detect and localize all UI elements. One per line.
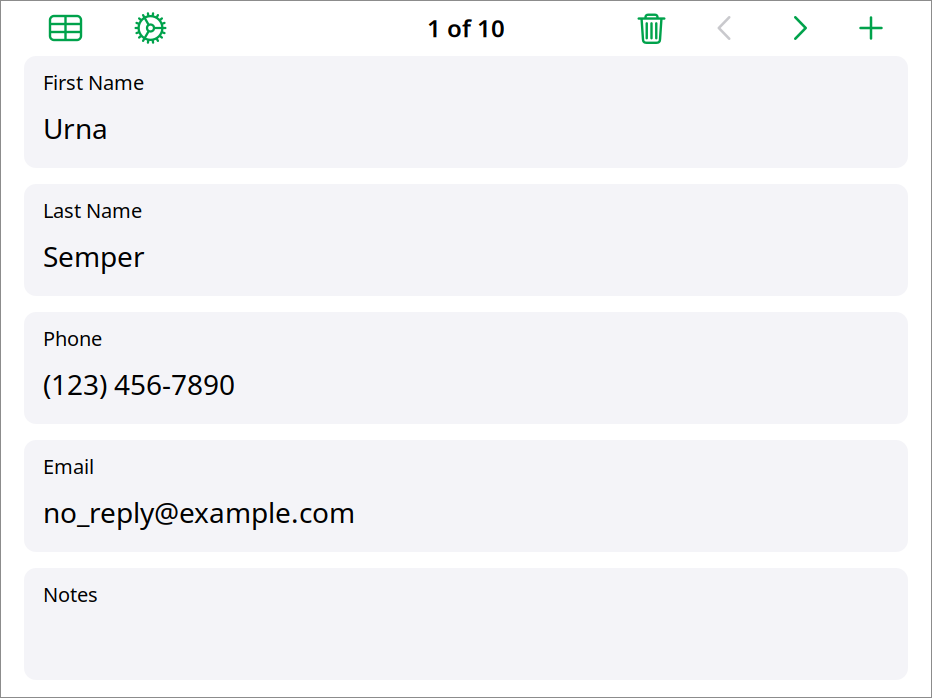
staticText: no_reply@example.com (43, 494, 355, 531)
button[interactable]: Last Name (24, 184, 908, 296)
button[interactable]: Settings (108, 4, 193, 52)
button[interactable]: First Name (24, 56, 908, 168)
button[interactable]: Add record (836, 4, 906, 52)
button[interactable]: Notes (24, 568, 908, 680)
staticText: Last Name (43, 197, 142, 224)
staticText: (123) 456-7890 (43, 366, 235, 403)
staticText: Phone (43, 325, 102, 352)
staticText: Semper (43, 238, 145, 275)
staticText: Notes (43, 581, 98, 608)
button[interactable]: Previous record (683, 4, 765, 52)
button[interactable]: Phone (24, 312, 908, 424)
staticText: Email (43, 453, 94, 480)
button[interactable]: Table view (23, 4, 108, 52)
staticText: Urna (43, 110, 108, 147)
button[interactable]: Email (24, 440, 908, 552)
button[interactable]: Delete record (620, 4, 683, 52)
staticText: First Name (43, 69, 144, 96)
button[interactable]: Next record (765, 4, 836, 52)
staticText: 1 of 10 (427, 12, 505, 44)
